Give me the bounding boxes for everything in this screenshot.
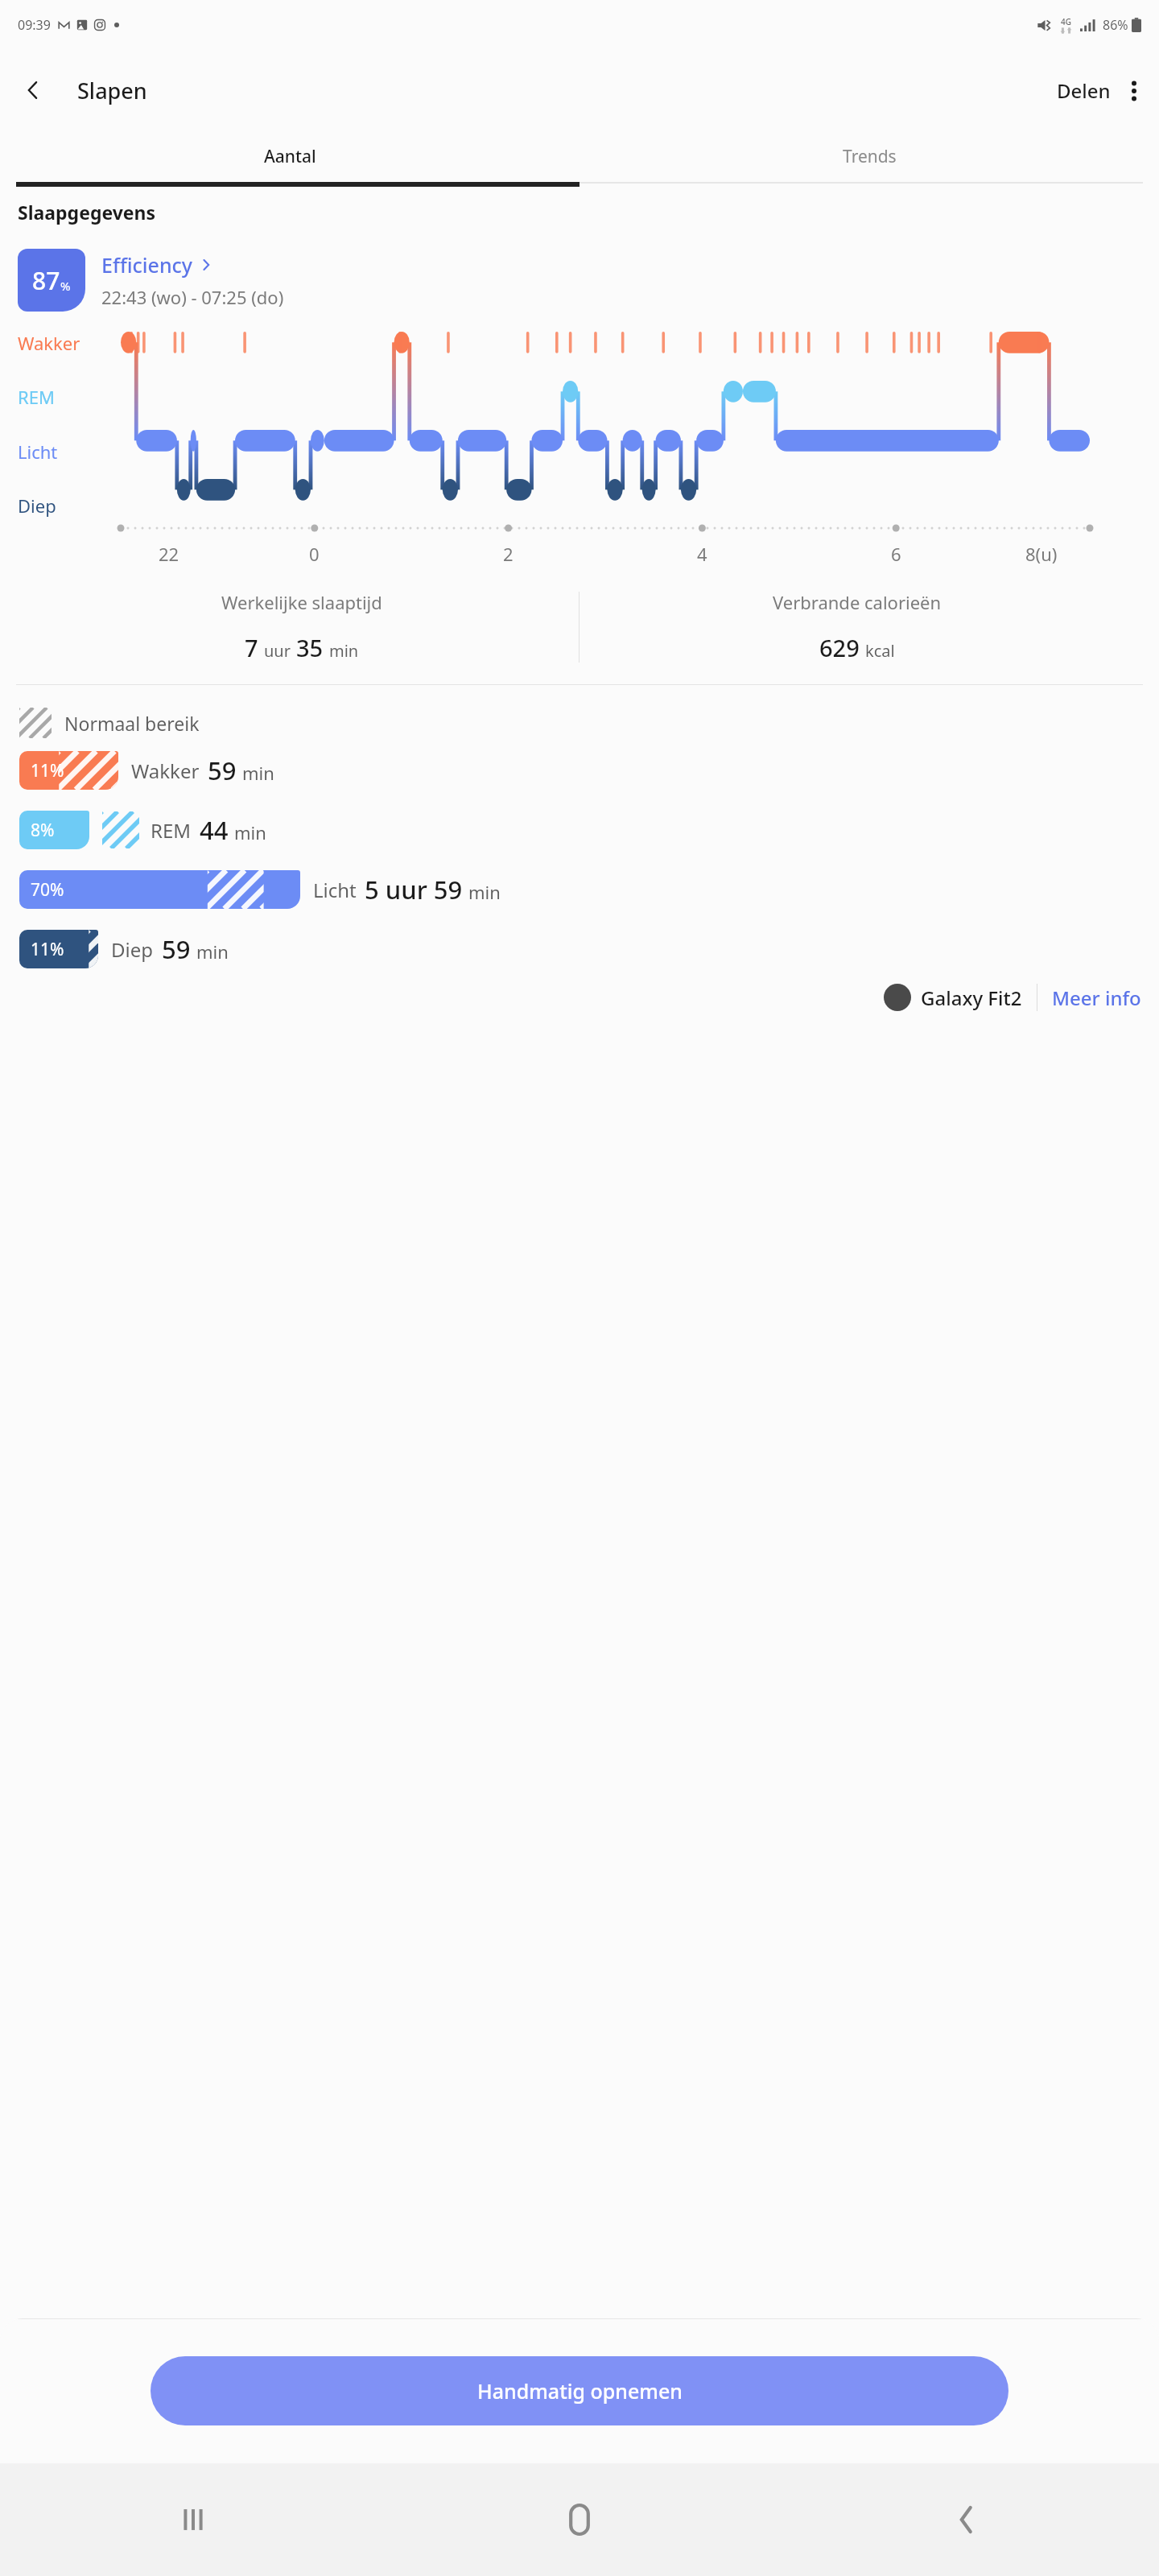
staticText: 6 <box>891 542 901 566</box>
button[interactable]: Efficiency <box>101 251 212 279</box>
button[interactable]: 87 <box>18 249 85 312</box>
button[interactable]: 11% <box>19 930 1143 968</box>
button[interactable]: 70% <box>19 870 1143 909</box>
staticText: kcal <box>865 640 895 662</box>
staticText: Verbrande calorieën <box>773 590 942 614</box>
staticText: Efficiency <box>101 251 193 279</box>
staticText: 11% <box>31 938 64 961</box>
staticText: 629 <box>819 632 860 663</box>
staticText: 86% <box>1103 16 1128 34</box>
staticText: uur <box>264 640 291 662</box>
staticText: 35 <box>296 632 324 663</box>
staticText: Werkelijke slaaptijd <box>221 590 382 614</box>
staticText: Diep <box>18 493 56 518</box>
staticText: 5 uur 59 <box>365 873 463 906</box>
staticText: REM <box>151 817 192 844</box>
staticText: 4 <box>697 542 707 566</box>
staticText: REM <box>18 385 55 409</box>
staticText: Wakker <box>131 758 200 784</box>
staticText: min <box>234 820 266 844</box>
button[interactable]: Home <box>386 2463 773 2576</box>
staticText: 70% <box>31 878 64 902</box>
staticText: 8(u) <box>1025 542 1058 566</box>
staticText: min <box>468 880 501 904</box>
staticText: 44 <box>200 813 229 847</box>
staticText: % <box>60 278 71 294</box>
button[interactable]: Back <box>11 72 55 109</box>
button[interactable]: Recents <box>0 2463 386 2576</box>
staticText: 22 <box>159 542 179 566</box>
staticText: 59 <box>162 932 191 966</box>
staticText: Licht <box>313 877 357 903</box>
staticText: 2 <box>503 542 514 566</box>
staticText: Galaxy Fit2 <box>921 985 1022 1011</box>
button[interactable]: Werkelijke slaaptijd <box>24 590 579 663</box>
staticText: Delen <box>1057 77 1111 104</box>
button[interactable]: Handmatig opnemen <box>151 2356 1008 2425</box>
staticText: Slapen <box>77 76 147 105</box>
staticText: min <box>329 640 359 662</box>
staticText: min <box>196 939 229 964</box>
button[interactable]: Back <box>773 2463 1159 2576</box>
staticText: Trends <box>843 145 897 168</box>
staticText: Normaal bereik <box>64 711 200 736</box>
staticText: 7 <box>245 632 258 663</box>
staticText: min <box>242 761 274 785</box>
button[interactable]: 11% <box>19 751 1143 790</box>
staticText: 11% <box>31 759 64 782</box>
button[interactable]: Aantal <box>0 130 579 182</box>
button[interactable]: 8% <box>19 811 1143 849</box>
button[interactable]: Trends <box>579 130 1159 182</box>
staticText: 09:39 <box>18 16 51 34</box>
staticText: Slaapgegevens <box>18 200 156 225</box>
staticText: 4G <box>1061 16 1071 27</box>
button[interactable]: More options <box>1119 71 1149 111</box>
staticText: 87 <box>32 264 60 297</box>
staticText: 8% <box>31 819 55 842</box>
button[interactable]: Verbrande calorieën <box>579 590 1135 663</box>
button[interactable]: Delen <box>1049 68 1119 114</box>
staticText: Aantal <box>264 145 316 168</box>
staticText: Handmatig opnemen <box>477 2377 683 2405</box>
button[interactable]: Meer info <box>1052 985 1141 1011</box>
staticText: Wakker <box>18 331 80 355</box>
staticText: Diep <box>111 936 154 963</box>
staticText: Licht <box>18 440 58 464</box>
staticText: 22:43 (wo) - 07:25 (do) <box>101 285 284 309</box>
staticText: 59 <box>208 753 237 787</box>
staticText: 0 <box>309 542 320 566</box>
